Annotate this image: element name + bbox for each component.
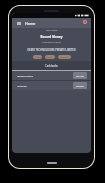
button[interactable]: Send — [45, 55, 55, 59]
staticText: Scan — [35, 56, 40, 59]
staticText: Send — [47, 56, 53, 59]
staticText: Record Money — [12, 35, 91, 39]
button[interactable]: Open navigation menu — [16, 20, 22, 26]
staticText: Request — [60, 56, 69, 59]
staticText: 45 Nov — [76, 74, 84, 77]
staticText: Available 0 Points — [12, 41, 91, 44]
button[interactable]: Coupons — [12, 81, 91, 90]
button[interactable]: Notifications — [81, 19, 89, 24]
button[interactable]: Recent Orders — [12, 71, 91, 80]
staticText: Recent Orders — [17, 74, 34, 77]
staticText: DEMO TECHNOLOGIES PRIVATE LIMITED — [12, 48, 91, 51]
button[interactable]: See Profile — [46, 29, 58, 32]
staticText: 25 Dec — [76, 84, 84, 87]
button[interactable]: Request — [58, 55, 71, 59]
staticText: Cashbacks — [45, 64, 58, 68]
staticText: Coupons — [17, 84, 27, 87]
button[interactable]: Scan — [33, 55, 42, 59]
staticText: Home — [25, 21, 36, 26]
